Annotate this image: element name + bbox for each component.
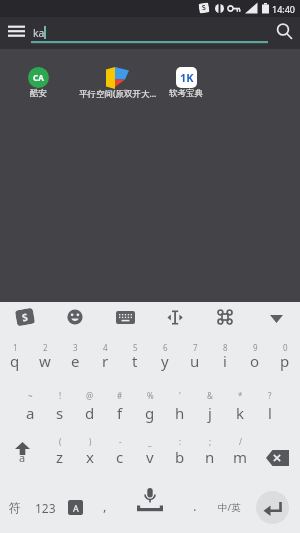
button[interactable]: [100, 302, 150, 332]
staticText: /: [239, 436, 242, 447]
staticText: z: [56, 447, 64, 467]
staticText: 中/英: [218, 501, 241, 514]
button[interactable]: ': [165, 382, 195, 432]
staticText: *: [238, 390, 243, 401]
staticText: o: [250, 351, 260, 371]
button[interactable]: ,: [90, 482, 120, 533]
button[interactable]: S: [0, 302, 50, 332]
button[interactable]: .: [180, 482, 210, 533]
staticText: 软考宝典: [169, 88, 203, 99]
staticText: 酷安: [30, 88, 47, 99]
button[interactable]: 4: [90, 332, 120, 382]
staticText: a: [26, 403, 35, 423]
staticText: 4: [103, 342, 108, 353]
staticText: ): [89, 436, 92, 447]
staticText: %: [147, 390, 154, 401]
button[interactable]: [200, 302, 250, 332]
button[interactable]: *: [225, 382, 255, 432]
staticText: S: [21, 310, 29, 324]
button[interactable]: [255, 432, 300, 482]
staticText: f: [117, 403, 123, 423]
staticText: t: [132, 351, 138, 371]
button[interactable]: 9: [240, 332, 270, 382]
staticText: 123: [35, 500, 56, 516]
staticText: k: [236, 403, 245, 423]
button[interactable]: a: [0, 432, 45, 482]
button[interactable]: 中/英: [210, 482, 255, 533]
button[interactable]: :: [165, 432, 195, 482]
button[interactable]: [50, 302, 100, 332]
button[interactable]: [268, 17, 300, 49]
staticText: j: [208, 403, 212, 423]
button[interactable]: 2: [30, 332, 60, 382]
button[interactable]: 5: [120, 332, 150, 382]
button[interactable]: 1: [0, 332, 30, 382]
staticText: &: [207, 390, 213, 401]
staticText: w: [39, 351, 51, 371]
staticText: A: [73, 502, 79, 514]
button[interactable]: /: [225, 432, 255, 482]
staticText: 9: [253, 342, 258, 353]
staticText: m: [233, 447, 248, 467]
staticText: #: [117, 390, 123, 401]
staticText: :: [179, 436, 182, 447]
staticText: r: [102, 351, 109, 371]
staticText: 平行空间(原双开大…: [79, 88, 157, 100]
staticText: 7: [193, 342, 198, 353]
staticText: -: [119, 436, 122, 447]
staticText: 6: [163, 342, 168, 353]
button[interactable]: 6: [150, 332, 180, 382]
button[interactable]: [150, 302, 200, 332]
button[interactable]: [255, 482, 300, 533]
staticText: 8: [223, 342, 228, 353]
staticText: q: [10, 351, 20, 371]
button[interactable]: %: [135, 382, 165, 432]
button[interactable]: -: [105, 432, 135, 482]
button[interactable]: ;: [195, 432, 225, 482]
button[interactable]: 123: [30, 482, 60, 533]
staticText: y: [161, 351, 169, 371]
button[interactable]: #: [105, 382, 135, 432]
button[interactable]: CA: [10, 55, 66, 103]
staticText: ?: [268, 390, 272, 401]
staticText: l: [268, 403, 272, 423]
staticText: 符: [9, 500, 21, 515]
staticText: .: [193, 497, 197, 515]
staticText: ,: [103, 497, 107, 515]
button[interactable]: 符: [0, 482, 30, 533]
button[interactable]: _: [135, 432, 165, 482]
staticText: c: [116, 447, 124, 467]
staticText: s: [56, 403, 64, 423]
staticText: h: [175, 403, 185, 423]
button[interactable]: ?: [255, 382, 285, 432]
staticText: b: [175, 447, 185, 467]
staticText: ': [179, 390, 181, 401]
button[interactable]: 8: [210, 332, 240, 382]
button[interactable]: 3: [60, 332, 90, 382]
button[interactable]: [0, 17, 34, 49]
button[interactable]: [250, 302, 300, 332]
staticText: a: [19, 450, 26, 465]
staticText: @: [86, 390, 94, 401]
button[interactable]: !: [45, 382, 75, 432]
button[interactable]: &: [195, 382, 225, 432]
button[interactable]: A: [60, 482, 90, 533]
button[interactable]: ~: [15, 382, 45, 432]
button[interactable]: ): [75, 432, 105, 482]
staticText: d: [85, 403, 95, 423]
button[interactable]: @: [75, 382, 105, 432]
staticText: i: [223, 351, 227, 371]
staticText: u: [190, 351, 200, 371]
button[interactable]: 7: [180, 332, 210, 382]
staticText: 1K: [180, 70, 194, 85]
button[interactable]: 平行空间(原双开大…: [78, 55, 158, 103]
staticText: 2: [43, 342, 48, 353]
staticText: _: [148, 436, 152, 447]
button[interactable]: 0: [270, 332, 300, 382]
staticText: g: [145, 403, 155, 423]
button[interactable]: [120, 482, 180, 533]
button[interactable]: 1K: [158, 55, 214, 103]
button[interactable]: (: [45, 432, 75, 482]
staticText: 3: [73, 342, 78, 353]
staticText: 14:40: [272, 3, 296, 15]
